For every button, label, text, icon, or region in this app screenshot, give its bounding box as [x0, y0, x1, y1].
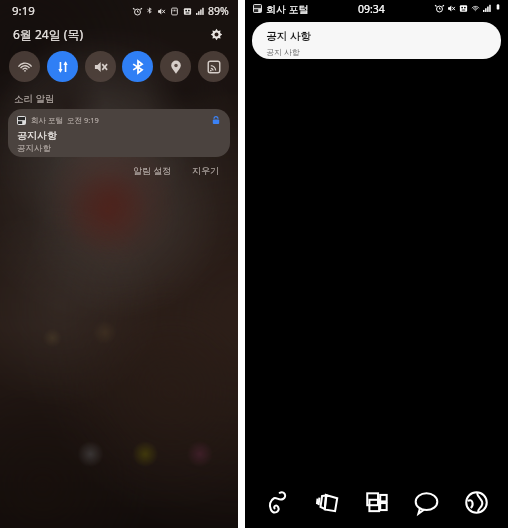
button[interactable]: KakaoTalk — [404, 480, 448, 524]
staticText: 회사 포털 — [31, 115, 63, 125]
button[interactable]: 회사 포털 — [8, 109, 230, 157]
staticText: 공지사항 — [17, 143, 51, 154]
button[interactable]: Bluetooth — [122, 51, 153, 82]
staticText: 6월 24일 (목) — [13, 26, 84, 42]
button[interactable]: Browser — [454, 480, 498, 524]
button[interactable]: 공지 사항 — [252, 22, 501, 59]
button[interactable]: Contacts — [305, 480, 349, 524]
staticText: 소리 알림 — [14, 92, 55, 105]
button[interactable]: Wi-Fi — [9, 51, 40, 82]
staticText: 89% — [208, 4, 229, 18]
staticText: 지우기 — [192, 165, 219, 176]
staticText: 09:34 — [358, 2, 385, 16]
button[interactable]: Location — [160, 51, 191, 82]
button[interactable]: Sound off — [85, 51, 116, 82]
button[interactable]: Smart View — [198, 51, 229, 82]
staticText: 공지 사항 — [266, 29, 311, 43]
button[interactable]: 알림 설정 — [128, 161, 177, 179]
button[interactable]: Apps — [355, 480, 399, 524]
button[interactable]: Settings — [206, 24, 226, 44]
staticText: 오전 9:19 — [67, 115, 99, 125]
staticText: 공지 사항 — [266, 46, 301, 57]
button[interactable]: Call — [255, 480, 299, 524]
staticText: 9:19 — [12, 3, 35, 19]
staticText: 알림 설정 — [133, 164, 172, 176]
button[interactable]: 지우기 — [187, 162, 224, 179]
button[interactable]: Mobile data — [47, 51, 78, 82]
staticText: 공지사항 — [17, 129, 57, 142]
staticText: 회사 포털 — [266, 2, 309, 16]
